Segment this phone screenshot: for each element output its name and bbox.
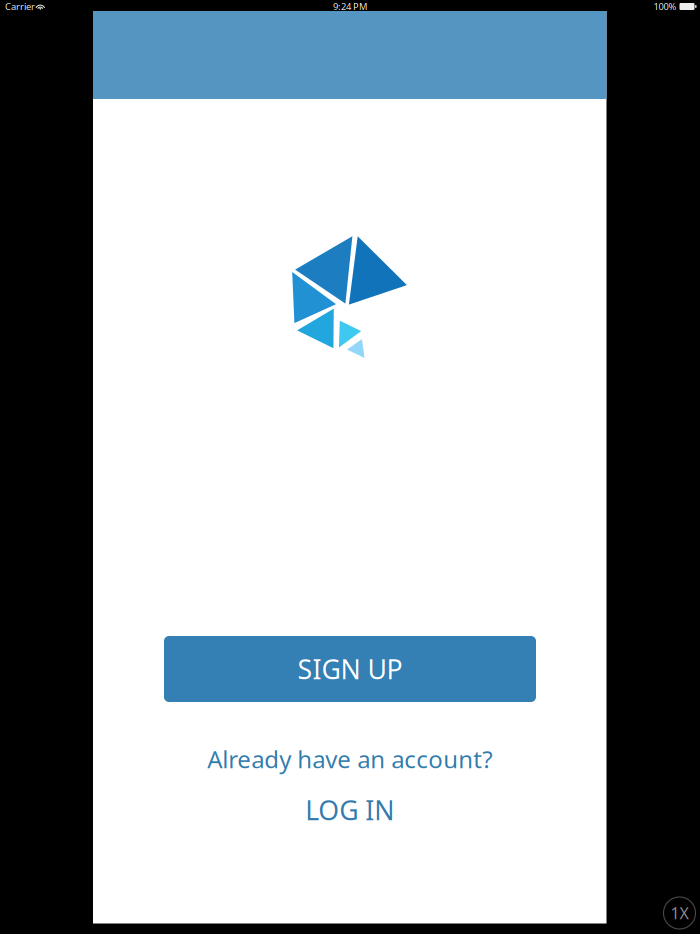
button[interactable]: Display scale 1X: [663, 897, 695, 929]
staticText: SIGN UP: [297, 651, 402, 687]
button[interactable]: SIGN UP: [164, 636, 536, 702]
button[interactable]: Already have an account?: [200, 744, 500, 774]
staticText: LOG IN: [305, 792, 394, 828]
button[interactable]: LOG IN: [280, 795, 420, 825]
staticText: 1X: [670, 902, 688, 924]
staticText: 9:24 PM: [333, 0, 367, 13]
staticText: Carrier: [5, 0, 35, 13]
staticText: 100%: [653, 0, 676, 13]
staticText: Already have an account?: [207, 743, 492, 775]
